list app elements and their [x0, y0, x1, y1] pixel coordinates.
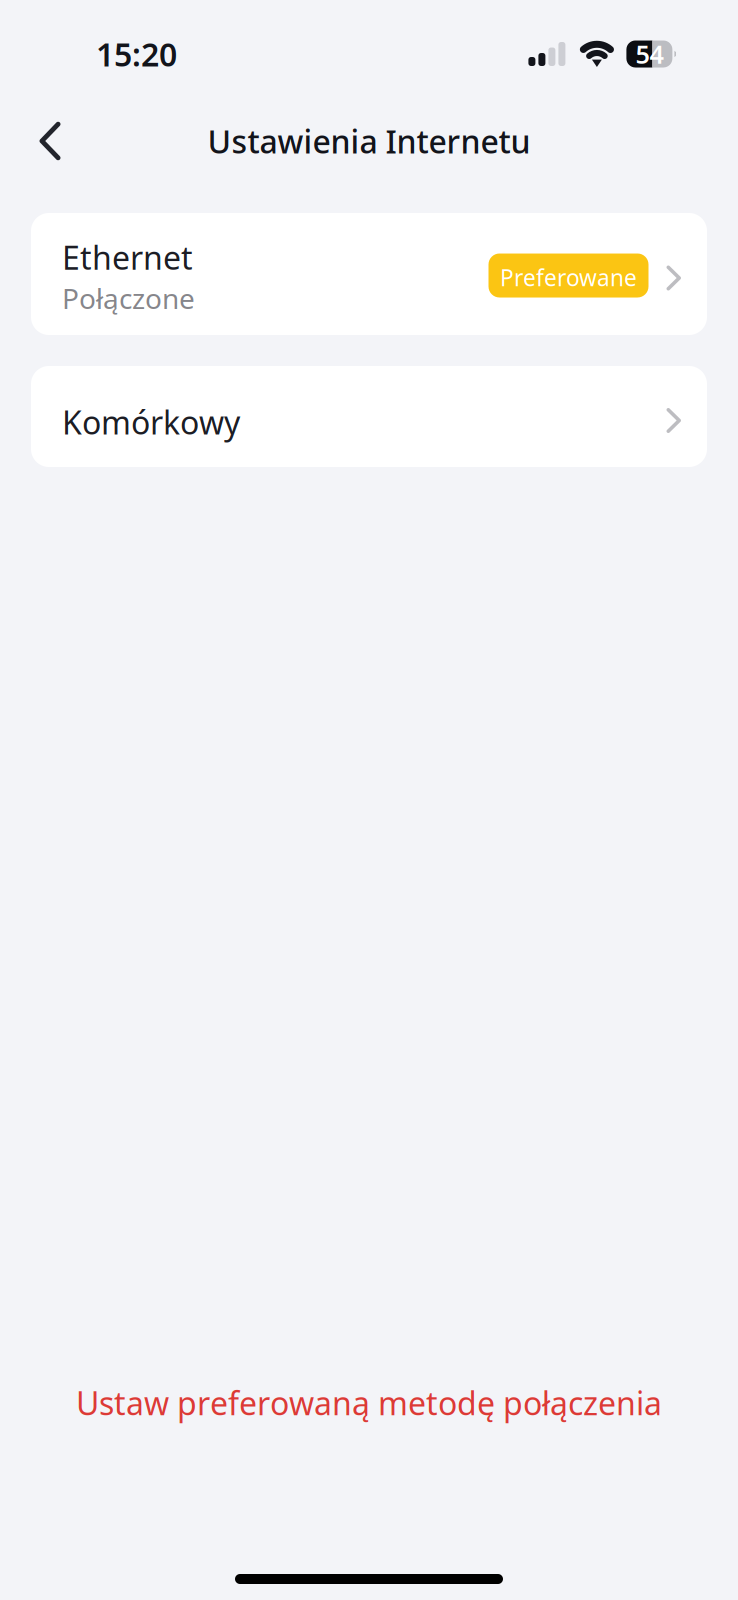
button[interactable]: Back [19, 110, 81, 172]
staticText: Komórkowy [62, 401, 240, 443]
staticText: Preferowane [500, 262, 637, 292]
staticText: 15:20 [96, 33, 177, 75]
staticText: Ustaw preferowaną metodę połączenia [76, 1381, 662, 1424]
button[interactable]: Komórkowy [31, 366, 707, 467]
staticText: 54 [635, 37, 663, 71]
staticText: Ustawienia Internetu [207, 120, 530, 162]
button[interactable]: Ethernet [31, 213, 707, 335]
staticText: Połączone [62, 280, 195, 317]
staticText: Ethernet [62, 236, 193, 279]
button[interactable]: Ustaw preferowaną metodę połączenia [0, 1371, 738, 1434]
